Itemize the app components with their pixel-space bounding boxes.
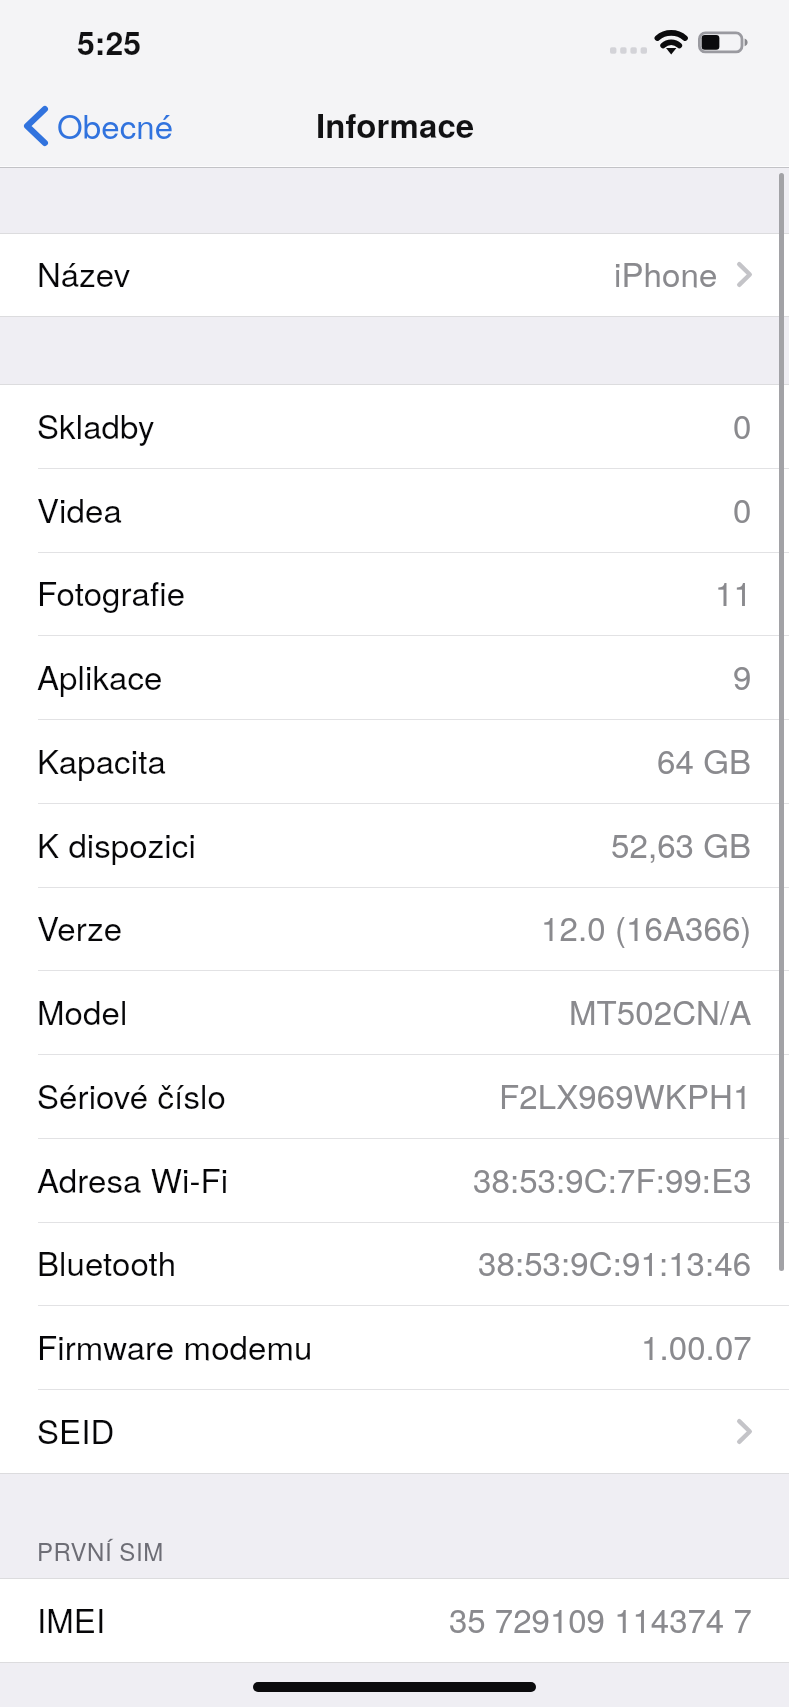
staticText: Informace — [316, 101, 475, 148]
staticText: Aplikace — [37, 652, 163, 699]
staticText: 1.00.07 — [641, 1322, 752, 1369]
button[interactable]: Videa — [0, 469, 789, 553]
staticText: Obecné — [57, 101, 174, 148]
button[interactable]: Verze — [0, 888, 789, 971]
staticText: Videa — [37, 485, 122, 532]
staticText: 35 729109 114374 7 — [449, 1595, 752, 1642]
staticText: IMEI — [37, 1595, 106, 1642]
button[interactable]: Sériové číslo — [0, 1055, 789, 1139]
staticText: 0 — [733, 401, 752, 448]
staticText: Sériové číslo — [37, 1071, 226, 1118]
staticText: iPhone — [614, 249, 718, 296]
button[interactable]: SEID — [0, 1390, 789, 1474]
staticText: 52,63 GB — [611, 820, 752, 867]
staticText: Skladby — [37, 401, 155, 448]
staticText: Název — [37, 249, 131, 296]
staticText: 12.0 (16A366) — [541, 903, 752, 950]
staticText: 9 — [733, 652, 752, 699]
button[interactable]: Kapacita — [0, 720, 789, 804]
button[interactable]: K dispozici — [0, 804, 789, 888]
staticText: Verze — [37, 903, 123, 950]
staticText: PRVNÍ SIM — [37, 1533, 164, 1567]
button[interactable]: Skladby — [0, 385, 789, 469]
staticText: Firmware modemu — [37, 1322, 313, 1369]
button[interactable]: Aplikace — [0, 636, 789, 720]
staticText: 0 — [733, 485, 752, 532]
staticText: Kapacita — [37, 736, 166, 783]
button[interactable]: IMEI — [0, 1579, 789, 1663]
button[interactable]: Fotografie — [0, 553, 789, 636]
button[interactable]: Název — [0, 234, 789, 317]
staticText: Model — [37, 987, 128, 1034]
button[interactable]: Model — [0, 971, 789, 1055]
staticText: MT502CN/A — [569, 987, 752, 1034]
staticText: F2LX969WKPH1 — [499, 1071, 752, 1118]
staticText: Fotografie — [37, 568, 186, 615]
button[interactable]: Firmware modemu — [0, 1306, 789, 1390]
button[interactable]: Back to Obecné — [24, 88, 174, 168]
staticText: Bluetooth — [37, 1238, 177, 1285]
staticText: 38:53:9C:7F:99:E3 — [473, 1155, 752, 1202]
button[interactable]: Adresa Wi-Fi — [0, 1139, 789, 1223]
staticText: 5:25 — [77, 19, 142, 65]
staticText: Adresa Wi-Fi — [37, 1155, 229, 1202]
staticText: 38:53:9C:91:13:46 — [478, 1238, 752, 1285]
staticText: 64 GB — [657, 736, 752, 783]
button[interactable]: Bluetooth — [0, 1223, 789, 1306]
staticText: SEID — [37, 1406, 115, 1453]
staticText: 11 — [715, 568, 752, 615]
staticText: K dispozici — [37, 820, 196, 867]
